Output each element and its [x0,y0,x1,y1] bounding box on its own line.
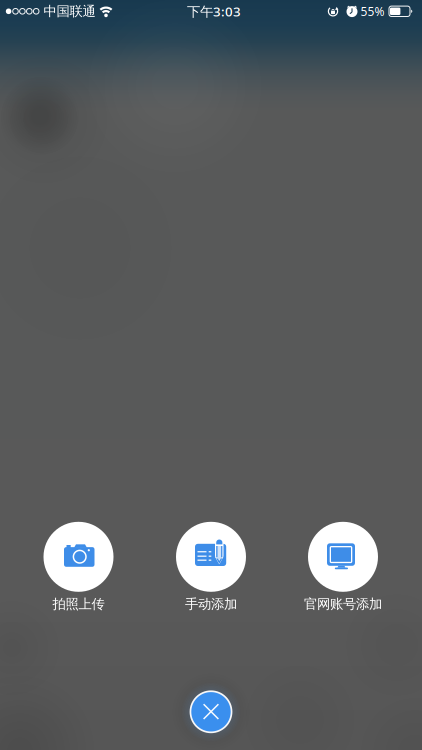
button[interactable]: 官网账号添加 [281,521,405,613]
staticText: 55% [360,3,384,19]
button[interactable]: 拍照上传 [16,521,140,613]
button[interactable]: 手动添加 [149,521,273,613]
staticText: 拍照上传 [52,596,104,612]
staticText: 中国联通 [43,3,95,19]
staticText: 手动添加 [185,596,237,612]
staticText: 官网账号添加 [304,596,382,612]
staticText: 下午3:03 [187,2,241,20]
button[interactable]: Close [189,690,233,734]
